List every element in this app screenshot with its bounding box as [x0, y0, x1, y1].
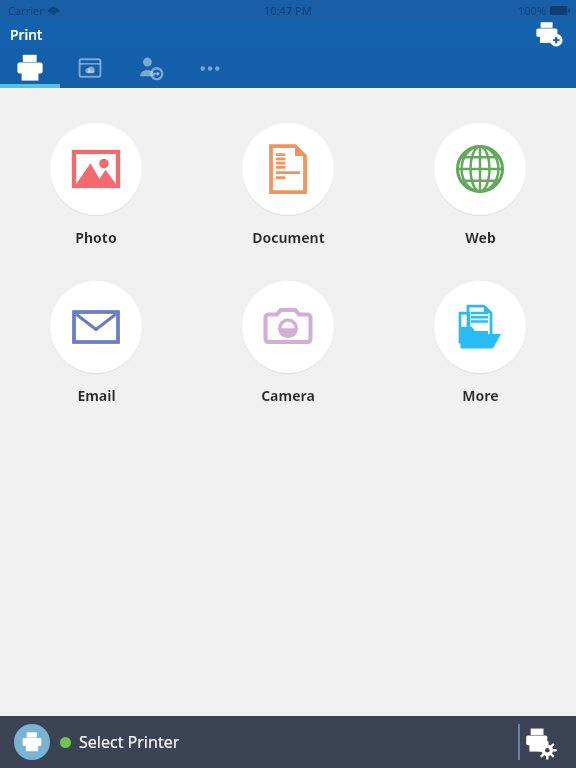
- button[interactable]: Select Printer: [14, 724, 180, 760]
- staticText: Photo: [75, 228, 117, 247]
- staticText: More: [462, 386, 499, 405]
- button[interactable]: Print: [10, 25, 43, 44]
- button[interactable]: More: [384, 279, 576, 405]
- staticText: Web: [465, 228, 496, 247]
- button[interactable]: More options: [180, 48, 240, 88]
- staticText: 100%: [518, 3, 547, 18]
- button[interactable]: Photo: [0, 121, 192, 247]
- button[interactable]: Cloud: [60, 48, 120, 88]
- button[interactable]: Web: [384, 121, 576, 247]
- button[interactable]: Share: [120, 48, 180, 88]
- button[interactable]: Add printer: [532, 20, 566, 48]
- button[interactable]: Document: [192, 121, 384, 247]
- button[interactable]: Printer settings: [518, 721, 560, 763]
- staticText: Select Printer: [79, 731, 180, 753]
- button[interactable]: Camera: [192, 279, 384, 405]
- button[interactable]: Email: [0, 279, 192, 405]
- staticText: Document: [252, 228, 325, 247]
- staticText: Email: [77, 386, 116, 405]
- button[interactable]: Print: [0, 48, 60, 88]
- staticText: 10:47 PM: [264, 3, 312, 18]
- staticText: Camera: [261, 386, 315, 405]
- staticText: Carrier: [8, 3, 44, 18]
